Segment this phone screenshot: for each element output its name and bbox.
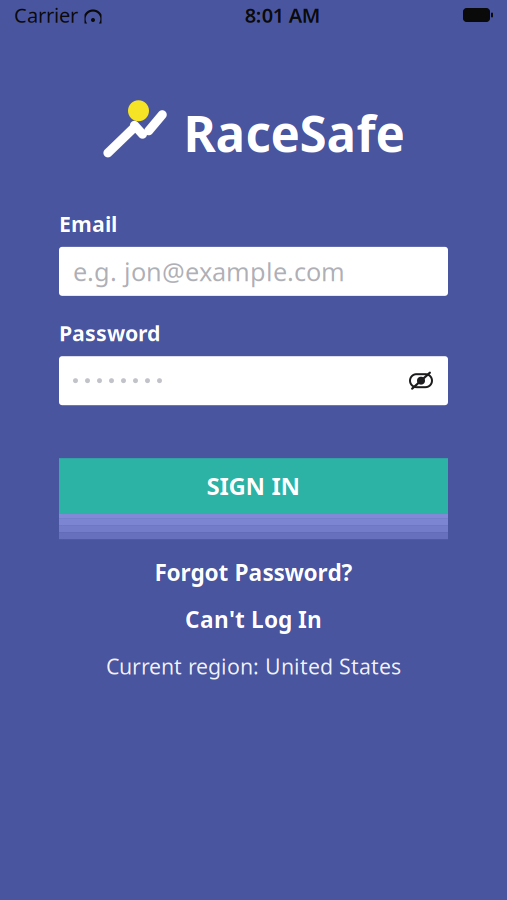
staticText: e.g. jon@example.com [73, 254, 345, 288]
staticText: 8:01 AM [245, 2, 321, 28]
button[interactable]: Can't Log In [0, 602, 507, 636]
button[interactable]: Current region: United States [0, 650, 507, 682]
staticText: Can't Log In [185, 604, 322, 634]
button[interactable]: Forgot Password? [0, 555, 507, 589]
button[interactable]: Show password [404, 364, 438, 398]
staticText: Carrier [14, 2, 78, 28]
staticText: RaceSafe [183, 100, 404, 165]
staticText: Current region: United States [106, 652, 401, 680]
staticText: Forgot Password? [154, 557, 352, 587]
staticText: Password [59, 319, 160, 347]
button[interactable]: SIGN IN [59, 458, 448, 513]
staticText: Email [59, 209, 117, 238]
staticText: SIGN IN [206, 470, 300, 502]
